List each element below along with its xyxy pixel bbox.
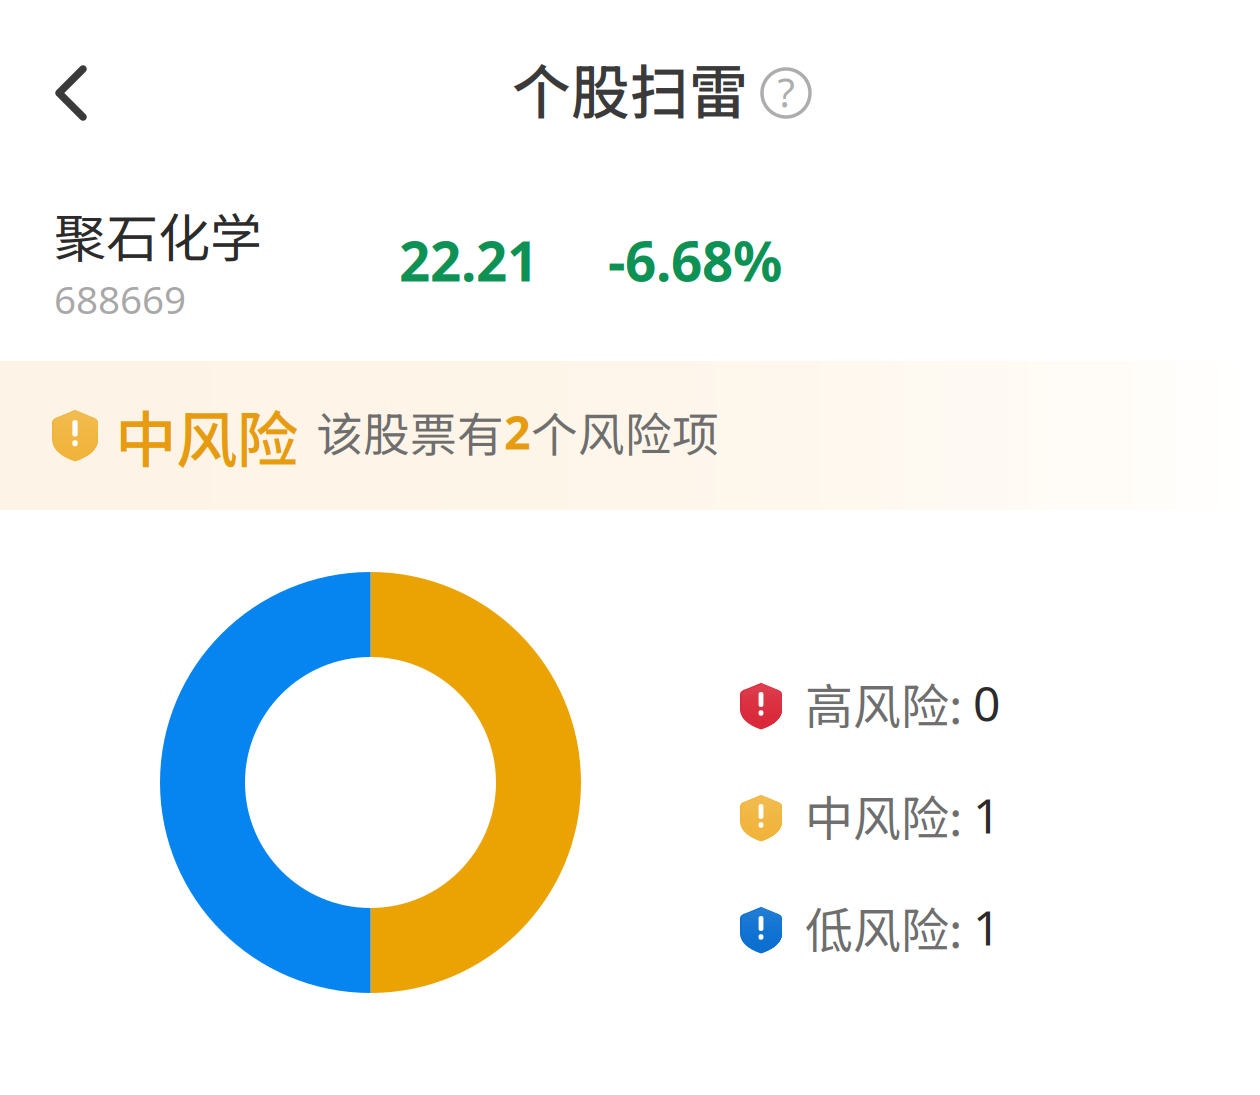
staticText: 中风险:	[805, 780, 973, 850]
staticText: 2	[504, 400, 531, 462]
staticText: 中风险	[115, 391, 298, 480]
button[interactable]: Help	[750, 52, 822, 124]
staticText: 688669	[54, 273, 186, 325]
button[interactable]: Back	[0, 14, 121, 162]
staticText: -6.68%	[608, 224, 782, 297]
staticText: 22.21	[399, 224, 538, 297]
staticText: 个股扫雷	[512, 45, 748, 130]
staticText: 1	[973, 783, 1000, 847]
staticText: 1	[973, 895, 1000, 959]
staticText: 该股票有	[316, 398, 504, 465]
staticText: ?	[777, 65, 794, 118]
staticText: 低风险:	[805, 892, 973, 962]
staticText: 0	[973, 671, 1000, 735]
staticText: 高风险:	[805, 668, 973, 738]
staticText: 个风险项	[531, 398, 719, 465]
staticText: 聚石化学	[54, 197, 262, 272]
